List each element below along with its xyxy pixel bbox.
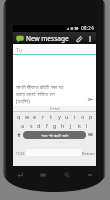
staticText: q [17, 113, 21, 120]
staticText: (ততদিন) [16, 98, 30, 105]
staticText: আপনি জীবনের প্রতিটি সময় যত [16, 84, 64, 91]
staticText: ভালো ভাবেই কাটাতে চান [16, 91, 55, 98]
button[interactable]: w [23, 112, 31, 121]
staticText: To [16, 46, 23, 54]
staticText: ?123 [16, 151, 25, 156]
button[interactable]: g [51, 121, 59, 130]
button[interactable]: o [79, 112, 87, 121]
button[interactable]: y [55, 112, 63, 121]
button[interactable]: Attach [73, 33, 84, 44]
staticText: d [37, 122, 41, 129]
staticText: Return [82, 151, 95, 156]
button[interactable]: t [47, 112, 55, 121]
staticText: w [25, 113, 30, 120]
button[interactable]: p [87, 112, 95, 121]
button[interactable]: Messaging [15, 34, 24, 43]
button[interactable]: l [83, 121, 91, 130]
staticText: New message [26, 34, 69, 43]
staticText: j [70, 122, 72, 129]
button[interactable]: Menu [37, 169, 49, 181]
button[interactable]: Options [84, 169, 96, 181]
staticText: s [30, 122, 33, 129]
staticText: পরের শব্দ বাছাই করুন [41, 133, 69, 138]
staticText: l [86, 122, 88, 129]
button[interactable]: Shift [15, 131, 22, 138]
button[interactable]: e [31, 112, 39, 121]
button[interactable]: a [19, 121, 27, 130]
staticText: t [50, 113, 52, 120]
button[interactable]: Backspace [87, 131, 94, 138]
button[interactable]: Return [81, 149, 95, 157]
button[interactable]: পরের শব্দ বাছাই করুন [23, 131, 86, 139]
button[interactable]: Search [61, 169, 73, 181]
staticText: g [53, 122, 57, 129]
button[interactable]: h [59, 121, 67, 130]
staticText: a [21, 122, 25, 129]
staticText: u [65, 113, 69, 120]
button[interactable]: Back [14, 169, 26, 181]
staticText: i [74, 113, 76, 120]
staticText: y [58, 113, 61, 120]
button[interactable]: k [75, 121, 83, 130]
button[interactable]: q [15, 112, 23, 121]
staticText: (শব্দের) [50, 106, 60, 111]
button[interactable]: More options [85, 34, 94, 43]
button[interactable]: f [43, 121, 51, 130]
button[interactable]: Send [85, 94, 96, 105]
button[interactable]: i [71, 112, 79, 121]
staticText: k [78, 122, 81, 129]
button[interactable]: Messaging [13, 32, 96, 44]
button[interactable]: r [39, 112, 47, 121]
button[interactable]: d [35, 121, 43, 130]
staticText: o [81, 113, 85, 120]
staticText: f [46, 122, 48, 129]
button[interactable]: u [63, 112, 71, 121]
staticText: p [89, 113, 93, 120]
button[interactable]: s [27, 121, 35, 130]
staticText: r [42, 113, 45, 120]
staticText: h [61, 122, 65, 129]
button[interactable]: j [67, 121, 75, 130]
staticText: e [33, 113, 37, 120]
button[interactable]: ?123 [14, 149, 26, 157]
staticText: 08:24 [81, 25, 94, 32]
